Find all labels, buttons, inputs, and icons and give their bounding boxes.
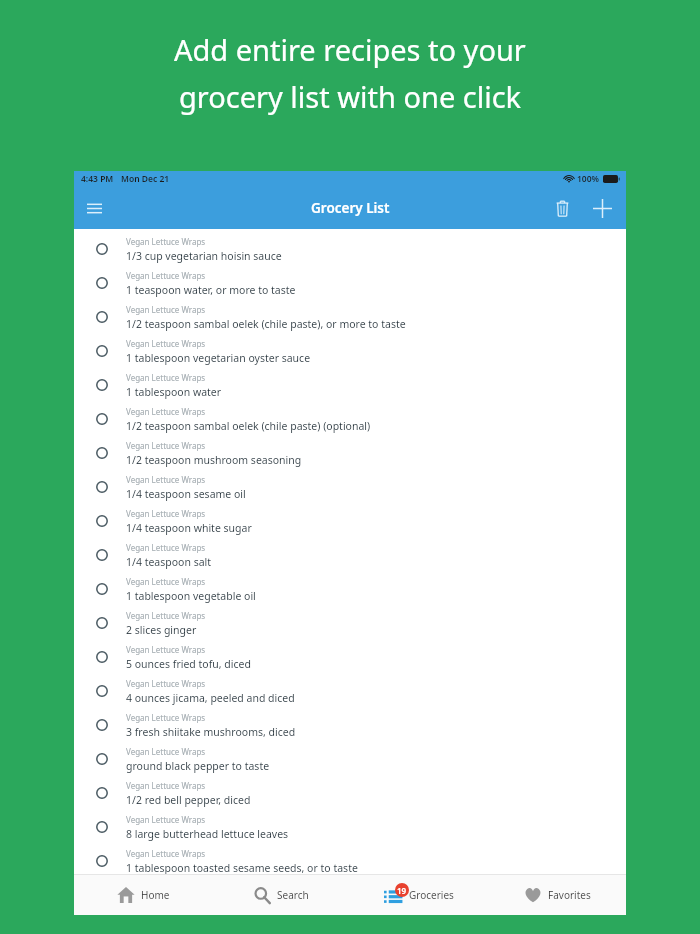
button[interactable]: Vegan Lettuce Wraps <box>74 844 626 878</box>
button[interactable]: Vegan Lettuce Wraps <box>74 776 626 810</box>
staticText: 3 fresh shiitake mushrooms, diced <box>126 725 296 739</box>
staticText: 1/4 teaspoon salt <box>126 555 212 569</box>
button[interactable]: Search <box>212 875 350 915</box>
button[interactable]: Add item <box>588 194 616 222</box>
staticText: Vegan Lettuce Wraps <box>126 848 206 859</box>
staticText: 1/2 teaspoon mushroom seasoning <box>126 453 302 467</box>
staticText: 1 tablespoon vegetable oil <box>126 589 256 603</box>
button[interactable]: Vegan Lettuce Wraps <box>74 266 626 300</box>
staticText: 1/2 teaspoon sambal oelek (chile paste),… <box>126 317 406 331</box>
staticText: Vegan Lettuce Wraps <box>126 610 206 621</box>
staticText: 19 <box>397 885 407 896</box>
button[interactable]: Vegan Lettuce Wraps <box>74 810 626 844</box>
staticText: 1/2 teaspoon sambal oelek (chile paste) … <box>126 419 371 433</box>
staticText: Vegan Lettuce Wraps <box>126 508 206 519</box>
staticText: Vegan Lettuce Wraps <box>126 678 206 689</box>
button[interactable]: Vegan Lettuce Wraps <box>74 674 626 708</box>
staticText: 1 tablespoon vegetarian oyster sauce <box>126 351 311 365</box>
staticText: Vegan Lettuce Wraps <box>126 372 206 383</box>
staticText: 1/4 teaspoon sesame oil <box>126 487 246 501</box>
staticText: Vegan Lettuce Wraps <box>126 440 206 451</box>
staticText: Mon Dec 21 <box>121 173 170 185</box>
button[interactable]: Vegan Lettuce Wraps <box>74 470 626 504</box>
staticText: Vegan Lettuce Wraps <box>126 712 206 723</box>
button[interactable]: Delete all <box>548 194 576 222</box>
staticText: Vegan Lettuce Wraps <box>126 780 206 791</box>
button[interactable]: Vegan Lettuce Wraps <box>74 504 626 538</box>
button[interactable]: Vegan Lettuce Wraps <box>74 742 626 776</box>
staticText: grocery list with one click <box>179 77 522 116</box>
button[interactable]: Vegan Lettuce Wraps <box>74 300 626 334</box>
staticText: 2 slices ginger <box>126 623 197 637</box>
staticText: 5 ounces fried tofu, diced <box>126 657 251 671</box>
staticText: 4 ounces jicama, peeled and diced <box>126 691 295 705</box>
staticText: 4:43 PM <box>81 173 114 185</box>
staticText: Favorites <box>548 888 591 902</box>
staticText: Vegan Lettuce Wraps <box>126 746 206 757</box>
staticText: Vegan Lettuce Wraps <box>126 474 206 485</box>
button[interactable]: Favorites <box>488 875 626 915</box>
staticText: 1 tablespoon water <box>126 385 222 399</box>
staticText: Vegan Lettuce Wraps <box>126 542 206 553</box>
staticText: 1 tablespoon toasted sesame seeds, or to… <box>126 861 358 875</box>
staticText: 1/4 teaspoon white sugar <box>126 521 252 535</box>
staticText: 1/3 cup vegetarian hoisin sauce <box>126 249 282 263</box>
staticText: Groceries <box>409 888 454 902</box>
staticText: Vegan Lettuce Wraps <box>126 236 206 247</box>
staticText: Vegan Lettuce Wraps <box>126 304 206 315</box>
button[interactable]: Vegan Lettuce Wraps <box>74 402 626 436</box>
button[interactable]: Vegan Lettuce Wraps <box>74 606 626 640</box>
button[interactable]: Vegan Lettuce Wraps <box>74 572 626 606</box>
button[interactable]: Menu <box>82 196 106 220</box>
button[interactable]: 19 <box>350 875 488 915</box>
staticText: 8 large butterhead lettuce leaves <box>126 827 289 841</box>
button[interactable]: Vegan Lettuce Wraps <box>74 232 626 266</box>
staticText: 1 teaspoon water, or more to taste <box>126 283 296 297</box>
button[interactable]: Vegan Lettuce Wraps <box>74 538 626 572</box>
staticText: Vegan Lettuce Wraps <box>126 270 206 281</box>
staticText: Vegan Lettuce Wraps <box>126 576 206 587</box>
button[interactable]: Vegan Lettuce Wraps <box>74 640 626 674</box>
button[interactable]: Vegan Lettuce Wraps <box>74 334 626 368</box>
staticText: Vegan Lettuce Wraps <box>126 814 206 825</box>
staticText: Search <box>277 888 309 902</box>
staticText: ground black pepper to taste <box>126 759 270 773</box>
button[interactable]: Vegan Lettuce Wraps <box>74 436 626 470</box>
staticText: 1/2 red bell pepper, diced <box>126 793 251 807</box>
staticText: Vegan Lettuce Wraps <box>126 338 206 349</box>
staticText: Vegan Lettuce Wraps <box>126 644 206 655</box>
button[interactable]: Home <box>74 875 212 915</box>
staticText: 100% <box>577 173 600 185</box>
staticText: Grocery List <box>311 199 390 217</box>
button[interactable]: Vegan Lettuce Wraps <box>74 368 626 402</box>
staticText: Vegan Lettuce Wraps <box>126 406 206 417</box>
button[interactable]: Vegan Lettuce Wraps <box>74 708 626 742</box>
staticText: Add entire recipes to your <box>174 30 526 69</box>
staticText: Home <box>141 888 170 902</box>
